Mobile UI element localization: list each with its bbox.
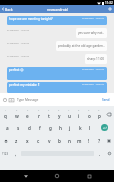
button[interactable]: ?123 [0,147,10,160]
button[interactable]: yes sure why not.. [76,28,107,38]
staticText: a [6,125,9,131]
staticText: 0 [98,109,100,112]
button[interactable]: l [85,121,95,134]
staticText: w [15,113,19,119]
button[interactable]: z [11,134,22,147]
button[interactable]: f [35,121,45,134]
button[interactable]: d [24,121,35,134]
button[interactable]: 4 [33,108,44,121]
staticText: z [15,138,18,144]
button[interactable]: 1 [0,108,11,121]
staticText: c [37,138,40,144]
button[interactable]: Add [106,5,114,13]
button[interactable]: perfect my mistake !! [7,82,107,93]
button[interactable]: 8 [74,108,84,121]
staticText: b [58,138,61,144]
button[interactable]: s [13,121,24,134]
button[interactable]: Backspace [104,108,114,121]
staticText: q [4,113,7,119]
staticText: perfect 😊 [9,68,24,72]
staticText: s [17,125,20,131]
staticText: ? [98,138,101,144]
staticText: d [28,125,31,131]
button[interactable]: m [74,134,84,147]
button[interactable]: Send [100,98,112,102]
staticText: probably at the old age garden.. [58,44,105,48]
staticText: 8 [78,109,80,112]
button[interactable]: 5 [44,108,54,121]
staticText: hope we are meeting tonight? [9,17,53,21]
button[interactable]: 6 [54,108,64,121]
staticText: , [15,151,17,157]
staticText: yes sure why not.. [78,31,105,35]
staticText: n [68,138,71,144]
staticText: u [68,113,71,119]
staticText: i [78,113,80,119]
staticText: 31/08/2021 1:25 PM [7,42,30,45]
button[interactable]: Emoji keyboard [105,147,114,160]
staticText: 3 [27,109,29,112]
button[interactable]: perfect 😊 [7,67,107,80]
staticText: v [48,138,51,144]
button[interactable]: k [75,121,85,134]
button[interactable]: j [65,121,75,134]
button[interactable]: b [54,134,64,147]
staticText: 31/08/2021 1:23 PM [82,17,105,20]
button[interactable]: Enter [95,121,114,134]
button[interactable]: ! [84,134,94,147]
staticText: 2 [16,109,18,112]
button[interactable]: x [22,134,33,147]
button[interactable]: a [2,121,13,134]
staticText: r [38,113,40,119]
staticText: newsandroid [47,7,68,12]
staticText: x [26,138,29,144]
button[interactable]: Back [0,5,15,13]
button[interactable]: Shift [0,134,11,147]
staticText: y [58,113,61,119]
button[interactable]: Emoji [2,97,8,103]
button[interactable]: 9 [84,108,94,121]
staticText: 7 [68,109,70,112]
button[interactable]: n [64,134,74,147]
staticText: ! [88,138,90,144]
staticText: f [39,125,41,131]
button[interactable]: Camera [8,97,14,103]
button[interactable]: ? [94,134,104,147]
staticText: 31/08/2021 1:26 PM [7,55,30,58]
button[interactable]: h [55,121,65,134]
staticText: 9 [88,109,90,112]
staticText: 5 [48,109,50,112]
staticText: 6 [58,109,60,112]
staticText: 4 [38,109,40,112]
button[interactable]: Back [20,170,32,182]
staticText: . [99,151,101,157]
button[interactable]: c [33,134,44,147]
staticText: perfect my mistake !! [9,83,40,87]
staticText: Type Message [17,98,39,102]
staticText: 11:32 [105,1,113,5]
button[interactable]: 2 [11,108,22,121]
button[interactable]: g [45,121,55,134]
button[interactable]: Home [51,170,63,182]
button[interactable]: probably at the old age garden.. [56,41,107,51]
button[interactable]: Recents [83,170,95,182]
button[interactable]: 0 [94,108,104,121]
button[interactable]: 3 [22,108,33,121]
button[interactable]: hope we are meeting tonight? [7,16,107,25]
button[interactable]: 7 [64,108,74,121]
staticText: 31/08/2021 1:24 PM [7,29,30,32]
staticText: Send [102,98,110,102]
staticText: m [77,138,82,144]
staticText: sharp 11:00 [87,57,105,61]
button[interactable]: v [44,134,54,147]
button[interactable]: , [10,147,21,160]
staticText: g [49,125,52,131]
staticText: o [88,113,91,119]
button[interactable]: sharp 11:00 [85,54,107,64]
button[interactable]: Voice input [104,134,114,147]
staticText: j [69,125,71,131]
button[interactable]: . [94,147,105,160]
button[interactable]: Type Message [15,96,100,103]
staticText: h [59,125,62,131]
